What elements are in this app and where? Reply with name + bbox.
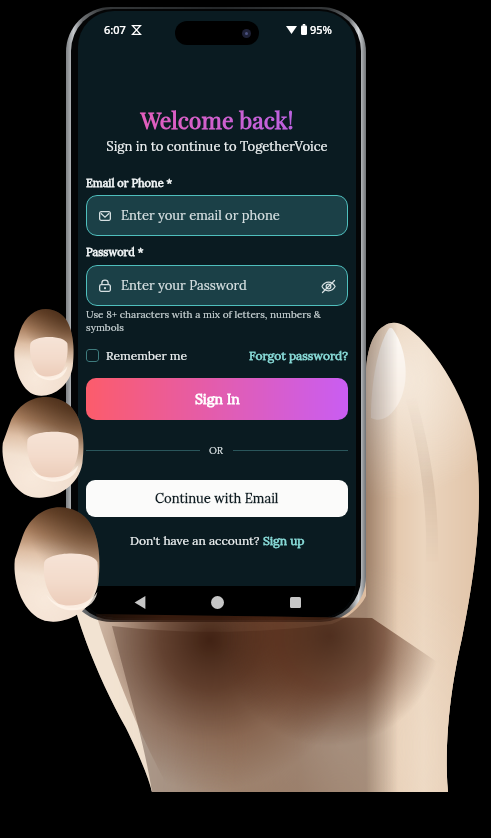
staticText: Sign in to continue to TogetherVoice [86,138,348,155]
staticText: Email or Phone * [86,176,173,190]
button[interactable]: Sign In [86,378,348,420]
staticText: OR [209,444,224,457]
staticText: Don't have an account? [130,533,263,548]
button[interactable]: Show password [320,278,336,294]
button[interactable]: Remember me [86,348,187,363]
staticText: Password * [86,245,144,259]
staticText: 6:07 [104,22,126,37]
staticText: Enter your email or phone [121,207,280,224]
staticText: Sign In [195,390,240,408]
staticText: Remember me [106,348,187,363]
button[interactable]: Sign up [263,533,305,548]
button[interactable]: Continue with Email [86,480,348,517]
button[interactable]: Recent apps [279,586,311,618]
staticText: Use 8+ characters with a mix of letters,… [86,308,348,334]
button[interactable]: Enter your email or phone [99,195,336,236]
button[interactable]: Forgot password? [249,348,348,363]
staticText: Enter your Password [121,277,247,294]
button[interactable]: Back [124,586,156,618]
staticText: Welcome back! [86,104,348,135]
button[interactable]: Home [201,586,233,618]
staticText: 95% [310,22,332,37]
staticText: Continue with Email [155,490,279,507]
button[interactable]: Enter your Password [99,265,336,306]
